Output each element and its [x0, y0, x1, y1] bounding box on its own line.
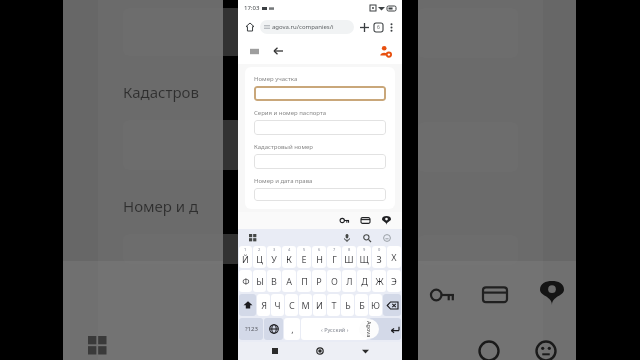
- button[interactable]: Tabs: [371, 20, 385, 34]
- button[interactable]: В: [267, 270, 281, 292]
- button[interactable]: Ь: [341, 294, 354, 316]
- button[interactable]: Л: [342, 270, 356, 292]
- staticText: Щ: [359, 253, 369, 265]
- button[interactable]: 8: [342, 246, 356, 268]
- staticText: 5: [303, 247, 306, 252]
- button[interactable]: Ч: [271, 294, 284, 316]
- staticText: Серия и номер паспорта: [254, 109, 327, 117]
- button[interactable]: Addresses: [379, 213, 394, 228]
- button[interactable]: О: [327, 270, 341, 292]
- button[interactable]: agova.ru/companies/i: [260, 20, 354, 34]
- staticText: О: [331, 275, 338, 287]
- button[interactable]: Д: [357, 270, 371, 292]
- staticText: ,: [291, 323, 294, 335]
- staticText: agova.ru/companies/i: [272, 23, 334, 31]
- button[interactable]: 4: [282, 246, 296, 268]
- button[interactable]: С: [285, 294, 298, 316]
- other: Change language: [269, 324, 279, 334]
- staticText: Д: [361, 275, 368, 287]
- button[interactable]: Ы: [253, 270, 266, 292]
- button[interactable]: Home: [243, 20, 257, 34]
- button[interactable]: Emoji: [380, 231, 394, 245]
- staticText: П: [301, 275, 308, 287]
- staticText: Е: [301, 253, 307, 265]
- button[interactable]: Search: [360, 231, 374, 245]
- button[interactable]: Account settings: [376, 42, 394, 60]
- staticText: Т: [331, 299, 337, 311]
- button[interactable]: ,: [284, 318, 300, 340]
- staticText: И: [316, 299, 323, 311]
- button[interactable]: Menu: [246, 43, 262, 59]
- button[interactable]: Shift: [239, 294, 256, 316]
- button[interactable]: 1: [239, 246, 252, 268]
- staticText: ?123: [245, 325, 258, 333]
- staticText: Ь: [345, 299, 351, 311]
- button[interactable]: 9: [357, 246, 371, 268]
- button[interactable]: Back: [357, 343, 373, 359]
- staticText: Ш: [344, 253, 354, 265]
- staticText: Р: [316, 275, 322, 287]
- staticText: Я: [261, 299, 267, 311]
- staticText: Ц: [256, 253, 263, 265]
- staticText: Ж: [375, 275, 384, 287]
- button[interactable]: Э: [387, 270, 401, 292]
- button[interactable]: Back: [270, 43, 286, 59]
- button[interactable]: [254, 120, 386, 135]
- button[interactable]: Passwords: [337, 213, 352, 228]
- staticText: Э: [391, 275, 397, 287]
- other: Backspace: [387, 300, 398, 311]
- button[interactable]: Payment methods: [358, 213, 373, 228]
- staticText: Ч: [274, 299, 281, 311]
- button[interactable]: Х: [387, 246, 401, 268]
- button[interactable]: Enter: [369, 318, 401, 340]
- button[interactable]: Home: [312, 343, 328, 359]
- staticText: Ю: [371, 299, 380, 311]
- staticText: 6: [318, 247, 321, 252]
- button[interactable]: New tab: [357, 20, 371, 34]
- staticText: Х: [391, 251, 397, 263]
- staticText: Номер участка: [254, 75, 298, 83]
- button[interactable]: 2: [253, 246, 266, 268]
- button[interactable]: ?123: [239, 318, 263, 340]
- staticText: 3: [273, 247, 276, 252]
- button[interactable]: Б: [355, 294, 368, 316]
- button[interactable]: М: [299, 294, 312, 316]
- button[interactable]: Ж: [372, 270, 386, 292]
- staticText: С: [289, 299, 295, 311]
- button[interactable]: Change language: [264, 318, 283, 340]
- button[interactable]: А: [282, 270, 296, 292]
- button[interactable]: 0: [372, 246, 386, 268]
- button[interactable]: Recent apps: [267, 343, 283, 359]
- button[interactable]: И: [313, 294, 326, 316]
- staticText: К: [286, 253, 292, 265]
- staticText: 8: [348, 247, 351, 252]
- staticText: Номер и д: [123, 196, 199, 216]
- button[interactable]: П: [297, 270, 311, 292]
- staticText: 17:03: [244, 4, 260, 12]
- button[interactable]: Р: [312, 270, 326, 292]
- staticText: 7: [333, 247, 336, 252]
- button[interactable]: ‹ Русский ›: [301, 318, 368, 340]
- button[interactable]: 6: [312, 246, 326, 268]
- button[interactable]: [254, 188, 386, 201]
- staticText: Agova: [366, 321, 373, 338]
- button[interactable]: Clipboard: [246, 231, 260, 245]
- button[interactable]: Я: [257, 294, 270, 316]
- button[interactable]: 5: [297, 246, 311, 268]
- button[interactable]: Т: [327, 294, 340, 316]
- button[interactable]: [254, 154, 386, 169]
- staticText: Й: [242, 253, 249, 265]
- staticText: 4: [288, 247, 291, 252]
- staticText: Кадастров: [123, 82, 199, 102]
- button[interactable]: Ю: [369, 294, 382, 316]
- button[interactable]: Ф: [239, 270, 252, 292]
- button[interactable]: Voice input: [340, 231, 354, 245]
- button[interactable]: 3: [267, 246, 281, 268]
- other: Shift: [243, 300, 253, 310]
- staticText: Л: [346, 275, 353, 287]
- staticText: 9: [363, 247, 366, 252]
- button[interactable]: Backspace: [383, 294, 401, 316]
- button[interactable]: [254, 86, 386, 101]
- button[interactable]: More options: [385, 21, 397, 33]
- button[interactable]: 7: [327, 246, 341, 268]
